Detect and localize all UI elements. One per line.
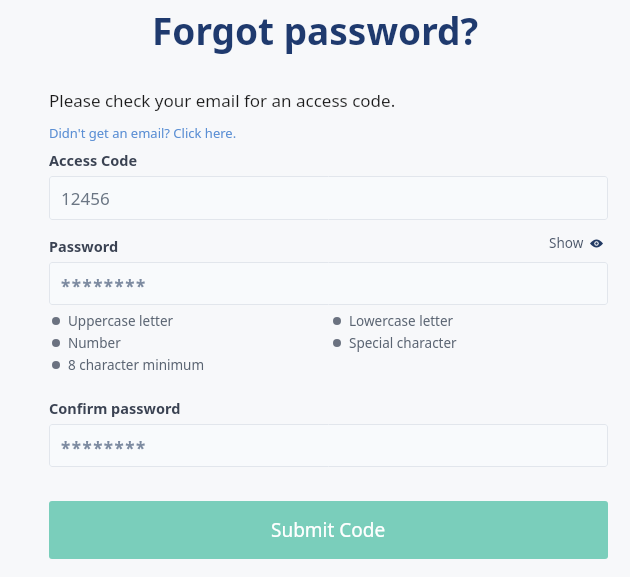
button[interactable]: ******** [49,262,608,305]
staticText: 12456 [61,187,110,210]
button[interactable]: 12456 [49,176,608,220]
staticText: ******** [61,437,147,460]
staticText: Didn't get an email? Click here. [49,124,237,142]
staticText: ******** [61,275,147,298]
staticText: 8 character minimum [68,356,205,374]
staticText: Uppercase letter [68,312,174,330]
staticText: Special character [349,334,457,352]
staticText: Confirm password [49,398,181,418]
staticText: Lowercase letter [349,312,454,330]
staticText: Please check your email for an access co… [49,89,396,112]
staticText: Submit Code [271,517,386,543]
button[interactable]: Didn't get an email? Click here. [49,124,237,142]
staticText: Number [68,334,121,352]
staticText: Forgot password? [0,5,630,55]
staticText: Password [49,236,119,256]
button[interactable]: Show password [549,234,603,252]
staticText: Access Code [49,150,138,170]
button[interactable]: ******** [49,424,608,467]
staticText: Show [549,234,584,252]
button[interactable]: Submit Code [49,501,608,559]
